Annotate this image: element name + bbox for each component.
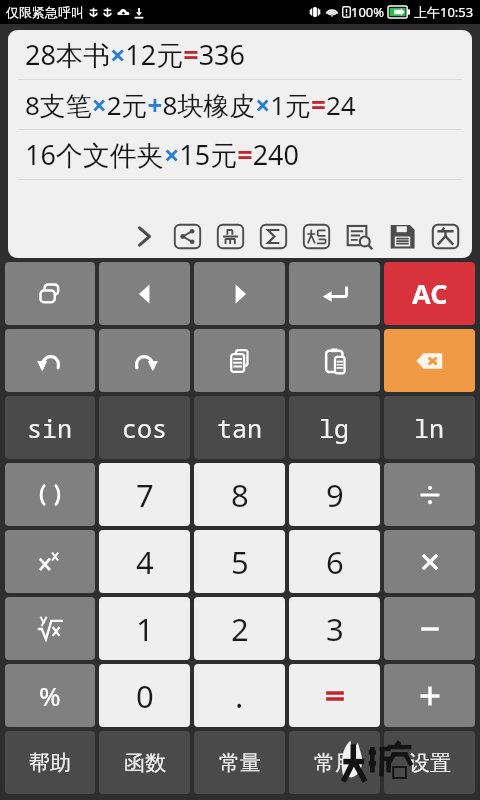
button[interactable]: Expand more (123, 215, 166, 257)
staticText: 设置 (409, 750, 451, 776)
button[interactable]: AC (384, 262, 475, 325)
button[interactable]: Search history (338, 215, 381, 257)
button[interactable]: 4 (99, 530, 190, 593)
button[interactable]: Uppercase numbers (295, 215, 338, 257)
button[interactable]: Equals (289, 664, 380, 727)
button[interactable]: sin (5, 396, 95, 459)
button[interactable]: 常用 (289, 731, 380, 794)
button[interactable]: Redo (99, 329, 190, 392)
button[interactable]: 5 (194, 530, 285, 593)
staticText: lg (319, 411, 350, 445)
button[interactable]: % (5, 664, 95, 727)
staticText: ln (414, 411, 445, 445)
button[interactable]: 7 (99, 463, 190, 526)
button[interactable]: Nth root (5, 597, 95, 660)
button[interactable]: lg (289, 396, 380, 459)
button[interactable]: Minus (384, 597, 475, 660)
staticText: 3 (326, 608, 344, 650)
staticText: 帮助 (29, 750, 71, 776)
staticText: sin (27, 411, 73, 445)
staticText: 7 (136, 474, 154, 516)
button[interactable]: 设置 (384, 731, 475, 794)
staticText: 100% (351, 3, 385, 21)
button[interactable]: . (194, 664, 285, 727)
staticText: 28本书×12元=336 (25, 36, 245, 73)
staticText: 1 (136, 608, 154, 650)
button[interactable]: 常量 (194, 731, 285, 794)
button[interactable]: 1 (99, 597, 190, 660)
button[interactable]: Paste (289, 329, 380, 392)
button[interactable]: 0 (99, 664, 190, 727)
button[interactable]: Text mode (424, 215, 467, 257)
button[interactable]: Backspace (384, 329, 475, 392)
button[interactable]: 函数 (99, 731, 190, 794)
button[interactable]: Move left (99, 262, 190, 325)
button[interactable]: Divide (384, 463, 475, 526)
button[interactable]: 帮助 (5, 731, 95, 794)
button[interactable]: Switch layout (5, 262, 95, 325)
staticText: 8支笔×2元+8块橡皮×1元=24 (25, 87, 356, 123)
staticText: 5 (231, 541, 249, 583)
button[interactable]: Fraction (209, 215, 252, 257)
button[interactable]: Plus (384, 664, 475, 727)
staticText: cos (122, 411, 168, 445)
staticText: tan (217, 411, 263, 445)
staticText: AC (412, 275, 448, 312)
button[interactable]: 8 (194, 463, 285, 526)
button[interactable]: 2 (194, 597, 285, 660)
staticText: % (39, 678, 61, 713)
button[interactable]: Copy (194, 329, 285, 392)
staticText: . (235, 675, 244, 717)
staticText: 9 (326, 474, 344, 516)
button[interactable]: 6 (289, 530, 380, 593)
button[interactable]: Save (381, 215, 424, 257)
staticText: 8 (231, 474, 249, 516)
staticText: 4 (136, 541, 154, 583)
staticText: 仅限紧急呼叫 (6, 4, 84, 20)
staticText: 函数 (124, 750, 166, 776)
staticText: 0 (136, 675, 154, 717)
button[interactable]: 9 (289, 463, 380, 526)
button[interactable]: tan (194, 396, 285, 459)
button[interactable]: Sum (252, 215, 295, 257)
staticText: 16个文件夹×15元=240 (25, 136, 299, 173)
button[interactable]: Enter (289, 262, 380, 325)
staticText: 常量 (219, 750, 261, 776)
button[interactable]: ln (384, 396, 475, 459)
button[interactable]: Multiply (384, 530, 475, 593)
button[interactable]: Undo (5, 329, 95, 392)
button[interactable]: Share (166, 215, 209, 257)
button[interactable]: Move right (194, 262, 285, 325)
button[interactable]: cos (99, 396, 190, 459)
button[interactable]: Power (5, 530, 95, 593)
staticText: 常用 (314, 750, 356, 776)
button[interactable]: Parentheses (5, 463, 95, 526)
staticText: 2 (231, 608, 249, 650)
staticText: 6 (326, 541, 344, 583)
button[interactable]: 3 (289, 597, 380, 660)
staticText: 上午10:53 (414, 3, 474, 21)
